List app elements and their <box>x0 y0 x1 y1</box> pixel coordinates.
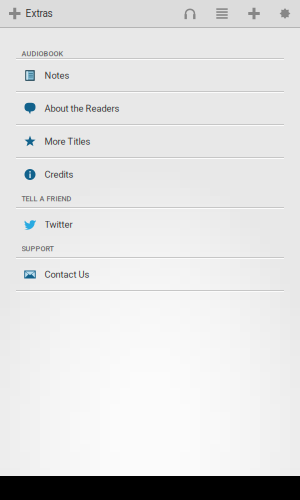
staticText: About the Readers <box>44 103 119 114</box>
button[interactable]: Settings <box>270 0 300 27</box>
button[interactable]: Extras <box>0 0 60 27</box>
staticText: SUPPORT <box>21 244 53 253</box>
button[interactable]: Notes <box>0 60 300 91</box>
button[interactable]: Add <box>238 0 270 27</box>
button[interactable]: About the Readers <box>0 93 300 124</box>
button[interactable]: Now Playing <box>174 0 206 27</box>
staticText: AUDIOBOOK <box>21 49 63 58</box>
staticText: Contact Us <box>44 269 89 280</box>
staticText: Extras <box>25 8 52 19</box>
button[interactable]: Contact Us <box>0 259 300 290</box>
staticText: Twitter <box>44 219 72 230</box>
staticText: TELL A FRIEND <box>21 194 71 203</box>
staticText: Credits <box>44 169 73 180</box>
button[interactable]: Twitter <box>0 209 300 240</box>
button[interactable]: More Titles <box>0 126 300 157</box>
staticText: Notes <box>44 70 69 81</box>
button[interactable]: Credits <box>0 159 300 190</box>
staticText: More Titles <box>44 136 90 147</box>
button[interactable]: Chapters <box>206 0 238 27</box>
